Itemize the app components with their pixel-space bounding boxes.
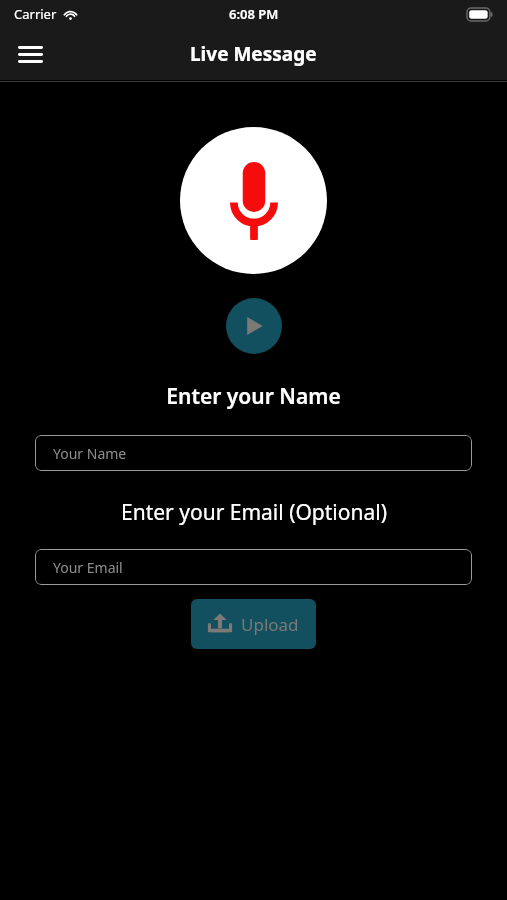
- staticText: Carrier: [14, 5, 57, 23]
- staticText: 6:08 PM: [229, 5, 279, 23]
- staticText: Enter your Name: [166, 382, 341, 411]
- staticText: Your Name: [53, 444, 127, 463]
- button[interactable]: Your Name input: [35, 435, 472, 471]
- staticText: Your Email: [53, 558, 123, 577]
- button[interactable]: Upload: [191, 599, 316, 649]
- staticText: Enter your Email (Optional): [121, 498, 387, 527]
- button[interactable]: Record voice message: [180, 127, 327, 274]
- button[interactable]: Play recording: [226, 298, 282, 354]
- staticText: Live Message: [190, 41, 317, 67]
- staticText: Upload: [241, 613, 299, 636]
- button[interactable]: Your Email input: [35, 549, 472, 585]
- button[interactable]: Open navigation menu: [8, 32, 52, 76]
